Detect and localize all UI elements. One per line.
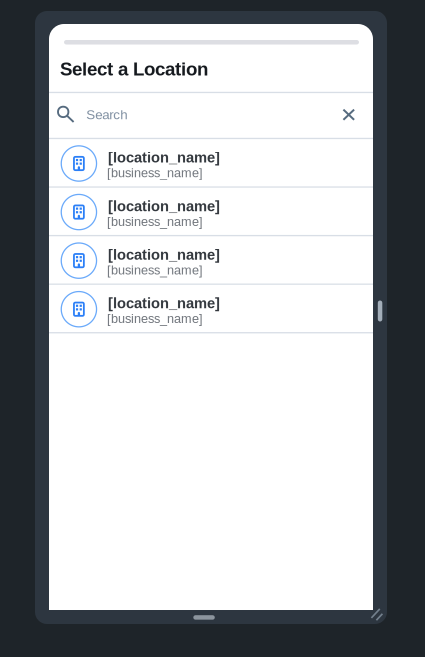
staticText: Search — [86, 107, 127, 122]
staticText: [location_name] — [108, 198, 220, 214]
staticText: [business_name] — [107, 166, 203, 180]
staticText: [business_name] — [107, 263, 203, 277]
staticText: Select a Location — [60, 59, 208, 80]
button[interactable]: [location_name] — [49, 236, 373, 285]
button[interactable]: [location_name] — [49, 139, 373, 188]
button[interactable]: [location_name] — [49, 285, 373, 333]
button[interactable]: [location_name] — [49, 188, 373, 236]
staticText: [location_name] — [108, 295, 220, 311]
button[interactable]: Search — [49, 93, 373, 138]
staticText: [location_name] — [108, 149, 220, 166]
staticText: [location_name] — [108, 246, 220, 263]
staticText: [business_name] — [107, 312, 203, 326]
staticText: [business_name] — [107, 214, 203, 229]
